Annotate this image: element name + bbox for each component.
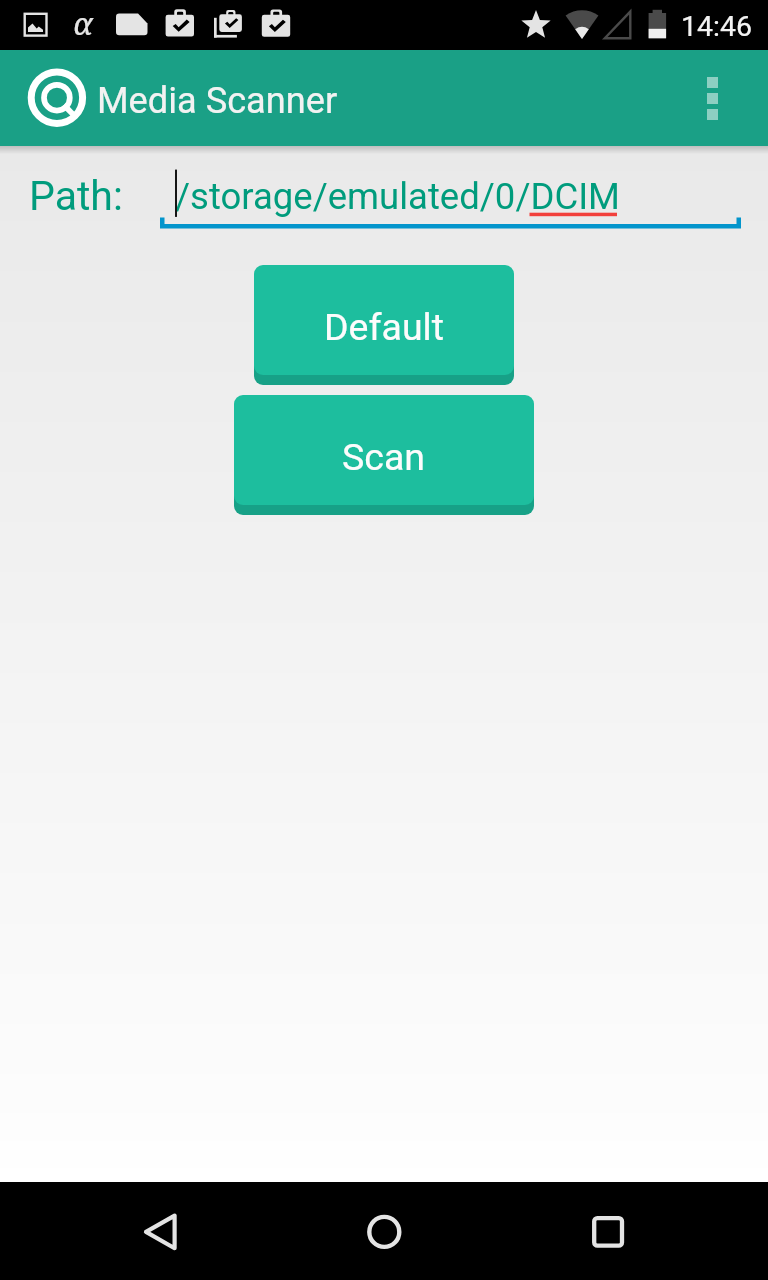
staticText: α [73,2,93,44]
button[interactable]: Back [120,1182,200,1280]
button[interactable]: More options [695,69,730,128]
staticText: Default [324,305,444,349]
button[interactable]: Default [254,265,514,385]
button[interactable]: Home [344,1182,424,1280]
button[interactable]: Scan [234,395,534,515]
staticText: Media Scanner [97,79,338,121]
staticText: Scan [342,435,426,479]
staticText: Path: [29,172,123,220]
staticText: /storage/emulated/0/DCIM [175,175,620,218]
button[interactable]: Recents [568,1182,648,1280]
staticText: 14:46 [681,10,752,43]
